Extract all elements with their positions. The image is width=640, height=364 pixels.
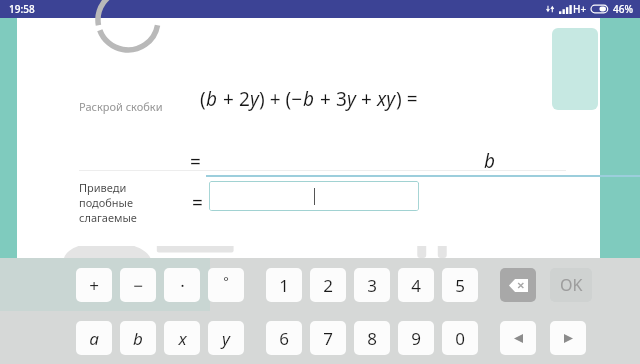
staticText: xy (377, 86, 396, 112)
staticText: H+ (573, 2, 587, 16)
button[interactable]: x (164, 321, 200, 355)
staticText: y (347, 86, 356, 112)
button[interactable]: 6 (266, 321, 302, 355)
staticText: Приведи (79, 180, 127, 195)
staticText: · (180, 274, 185, 297)
staticText: 2 (323, 274, 333, 297)
button[interactable]: b (120, 321, 156, 355)
staticText: 0 (455, 327, 465, 350)
button[interactable]: y (208, 321, 244, 355)
staticText: Раскрой скобки (79, 99, 163, 114)
button[interactable]: 0 (442, 321, 478, 355)
staticText: = (190, 149, 206, 175)
button[interactable]: + (76, 268, 112, 302)
button[interactable]: 7 (310, 321, 346, 355)
staticText: OK (560, 274, 583, 296)
button[interactable]: 3 (354, 268, 390, 302)
staticText: 4 (411, 274, 421, 297)
staticText: b (484, 148, 496, 174)
staticText: 7 (323, 327, 333, 350)
staticText: 46% (613, 2, 633, 16)
button[interactable]: · (164, 268, 200, 302)
staticText: 5 (455, 274, 465, 297)
staticText: x (178, 327, 187, 350)
button[interactable]: 4 (398, 268, 434, 302)
staticText: + (89, 274, 99, 297)
staticText: + (315, 86, 336, 112)
staticText: ° (223, 272, 229, 290)
staticText: b (303, 86, 315, 112)
button[interactable]: Move right (550, 321, 586, 355)
button[interactable]: 1 (266, 268, 302, 302)
button[interactable]: − (120, 268, 156, 302)
staticText: 9 (411, 327, 421, 350)
staticText: y (222, 327, 230, 350)
staticText: a (89, 327, 99, 350)
button[interactable]: 2 (310, 268, 346, 302)
button[interactable]: Move left (500, 321, 536, 355)
staticText: 19:58 (9, 2, 35, 16)
button[interactable]: 9 (398, 321, 434, 355)
staticText: − (133, 274, 143, 297)
staticText: ( (200, 86, 206, 112)
button[interactable]: OK (550, 268, 592, 302)
button[interactable]: a (76, 321, 112, 355)
button[interactable]: ° (208, 268, 244, 302)
staticText: ) = (396, 86, 418, 112)
staticText: 1 (279, 274, 289, 297)
button[interactable]: 8 (354, 321, 390, 355)
staticText: 3 (367, 274, 377, 297)
staticText: 6 (279, 327, 289, 350)
staticText: 3 (336, 86, 347, 112)
staticText: + (356, 86, 377, 112)
button[interactable]: Backspace (500, 268, 536, 302)
staticText: ) + (− (259, 86, 303, 112)
staticText: 2 (239, 86, 250, 112)
button[interactable] (209, 181, 419, 211)
staticText: = (192, 190, 203, 216)
staticText: подобные (79, 195, 134, 210)
staticText: b (206, 86, 218, 112)
staticText: 8 (367, 327, 377, 350)
staticText: y (250, 86, 259, 112)
staticText: + (218, 86, 239, 112)
staticText: b (133, 327, 143, 350)
staticText: слагаемые (79, 210, 137, 225)
button[interactable]: 5 (442, 268, 478, 302)
